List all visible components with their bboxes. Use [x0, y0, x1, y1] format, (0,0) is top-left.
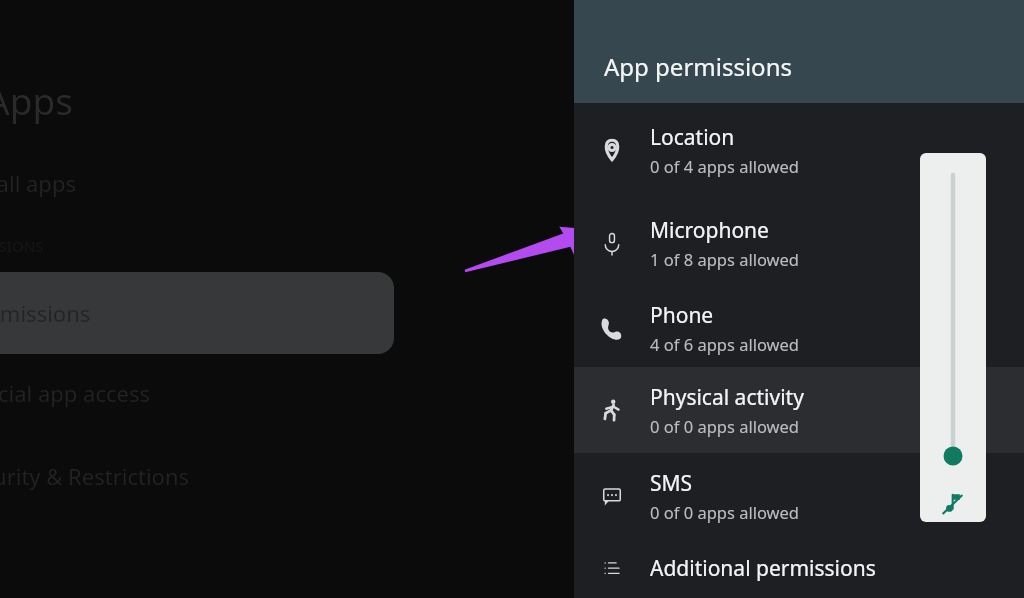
button[interactable]: Location: [574, 103, 1024, 196]
staticText: SMS: [650, 469, 693, 498]
staticText: Physical activity: [650, 383, 804, 412]
button[interactable]: Physical activity: [574, 367, 1024, 453]
staticText: App permissions: [0, 298, 91, 328]
staticText: Additional permissions: [650, 554, 876, 583]
staticText: Location: [650, 123, 735, 152]
button[interactable]: Media volume slider: [920, 153, 986, 522]
button[interactable]: SMS: [574, 453, 1024, 538]
staticText: Security & Restrictions: [0, 461, 190, 491]
staticText: 0 of 0 apps allowed: [650, 501, 799, 523]
staticText: PERMISSIONS: [0, 236, 44, 256]
button[interactable]: Phone: [574, 289, 1024, 367]
staticText: Phone: [650, 301, 714, 330]
staticText: 0 of 0 apps allowed: [650, 415, 799, 437]
staticText: See all apps: [0, 168, 76, 198]
button[interactable]: Microphone: [574, 196, 1024, 289]
staticText: Apps: [0, 75, 73, 125]
staticText: Special app access: [0, 378, 151, 408]
staticText: 1 of 8 apps allowed: [650, 248, 799, 270]
staticText: 4 of 6 apps allowed: [650, 333, 799, 355]
staticText: 0 of 4 apps allowed: [650, 155, 799, 177]
staticText: Microphone: [650, 216, 769, 245]
button[interactable]: App permissions: [0, 272, 394, 354]
button[interactable]: Additional permissions: [574, 538, 1024, 598]
staticText: App permissions: [604, 50, 792, 83]
